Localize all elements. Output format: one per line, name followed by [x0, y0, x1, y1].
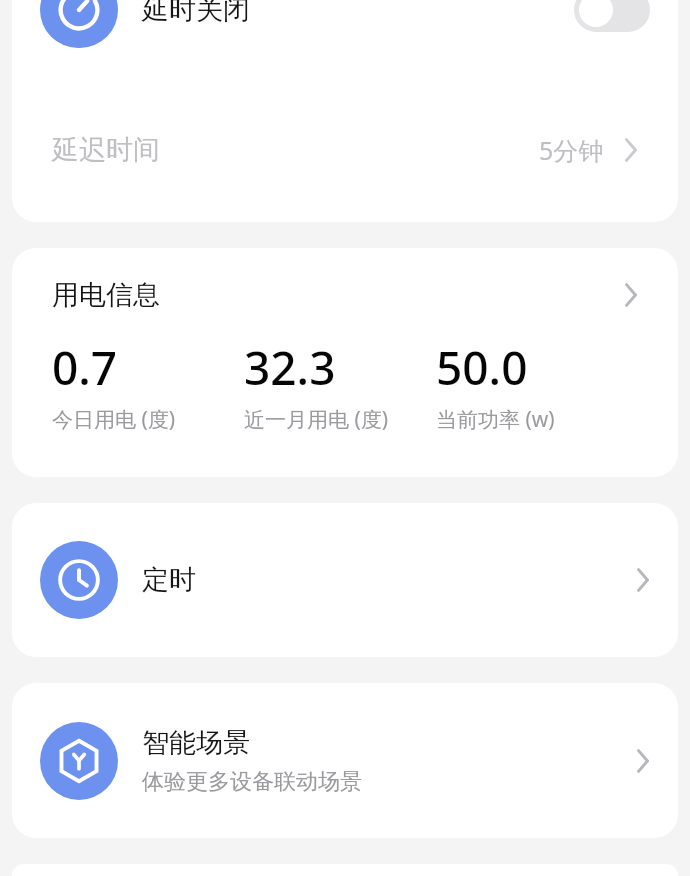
staticText: 当前功率 (w) [436, 405, 555, 434]
staticText: 32.3 [244, 336, 336, 399]
staticText: 今日用电 (度) [52, 405, 176, 434]
staticText: 50.0 [436, 336, 528, 399]
button[interactable]: 延时关闭 [12, 0, 678, 48]
staticText: 智能场景 [142, 726, 250, 760]
staticText: 用电信息 [52, 278, 160, 312]
staticText: 定时 [142, 563, 196, 597]
staticText: 近一月用电 (度) [244, 405, 389, 434]
button[interactable]: 用电信息 [12, 248, 678, 477]
button[interactable]: 延时关闭开关 [574, 0, 650, 32]
staticText: 5分钟 [539, 133, 604, 167]
staticText: 延时关闭 [142, 0, 250, 27]
button[interactable]: 定时 [12, 503, 678, 657]
staticText: 0.7 [52, 336, 118, 399]
staticText: 体验更多设备联动场景 [142, 768, 362, 796]
button[interactable]: 延迟时间 [12, 100, 678, 200]
button[interactable]: 智能场景 [12, 683, 678, 838]
staticText: 延迟时间 [52, 133, 160, 167]
